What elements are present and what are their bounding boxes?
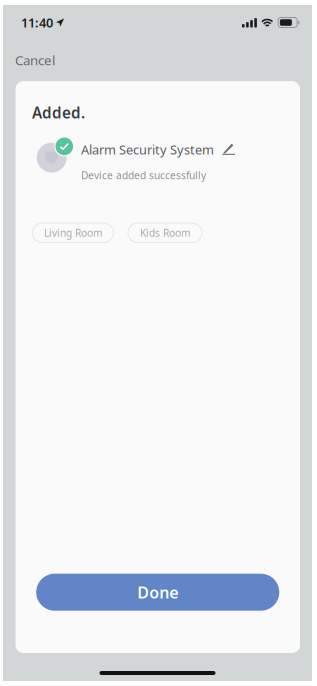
staticText: Kids Room [140, 226, 190, 240]
button[interactable]: Rename device [214, 144, 235, 156]
button[interactable]: Cancel [3, 45, 67, 75]
staticText: Device added successfully [81, 168, 206, 182]
staticText: Done [137, 581, 178, 603]
staticText: Cancel [15, 51, 55, 69]
staticText: Alarm Security System [81, 141, 214, 158]
button[interactable]: Living Room [32, 223, 113, 243]
button[interactable]: Done [36, 574, 279, 611]
staticText: Living Room [44, 226, 102, 240]
staticText: Added. [32, 102, 85, 123]
button[interactable]: Kids Room [128, 223, 202, 243]
staticText: 11:40 [21, 14, 53, 31]
